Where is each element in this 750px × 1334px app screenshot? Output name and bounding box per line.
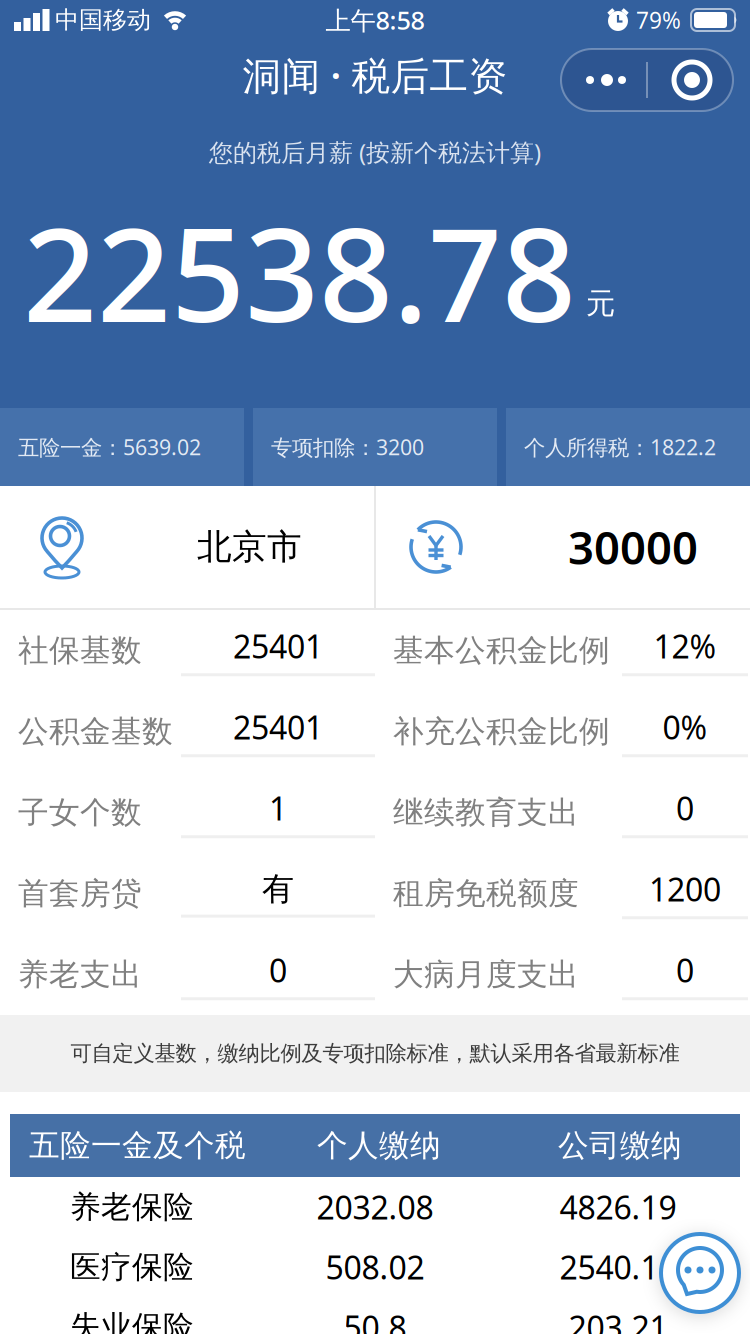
staticText: 公司缴纳 xyxy=(558,1127,682,1164)
staticText: 508.02 xyxy=(325,1246,424,1288)
button[interactable]: 25401 xyxy=(181,706,375,757)
button[interactable]: 关闭小程序 xyxy=(647,49,733,111)
staticText: 五险一金：5639.02 xyxy=(18,433,201,461)
staticText: 专项扣除：3200 xyxy=(271,433,424,461)
staticText: 基本公积金比例 xyxy=(393,632,610,669)
staticText: 养老保险 xyxy=(70,1188,194,1226)
staticText: 25401 xyxy=(233,625,323,667)
button[interactable]: 0 xyxy=(181,949,375,1000)
staticText: 大病月度支出 xyxy=(393,956,579,993)
staticText: 您的税后月薪 (按新个税法计算) xyxy=(209,136,541,168)
staticText: 22538.78 xyxy=(23,186,576,358)
staticText: 补充公积金比例 xyxy=(393,713,610,750)
button[interactable]: 1 xyxy=(181,787,375,838)
staticText: 0 xyxy=(676,949,694,991)
button[interactable]: 更多 xyxy=(561,49,647,111)
staticText: 失业保险 xyxy=(70,1308,194,1334)
button[interactable]: 客服咨询 xyxy=(661,1234,739,1312)
button[interactable]: 12% xyxy=(622,625,748,676)
button[interactable]: 0 xyxy=(622,787,748,838)
staticText: 中国移动 xyxy=(55,5,151,35)
staticText: 社保基数 xyxy=(18,632,142,669)
button[interactable]: 25401 xyxy=(181,625,375,676)
staticText: 继续教育支出 xyxy=(393,794,579,831)
staticText: 0 xyxy=(269,949,287,991)
staticText: 79% xyxy=(636,5,681,35)
staticText: 4826.19 xyxy=(559,1186,676,1228)
staticText: 有 xyxy=(262,869,294,909)
staticText: 12% xyxy=(653,625,716,667)
button[interactable]: 1200 xyxy=(622,868,748,919)
button[interactable]: 30000 xyxy=(376,486,750,608)
staticText: 洞闻 · 税后工资 xyxy=(242,49,507,101)
button[interactable]: 有 xyxy=(181,869,375,918)
button[interactable]: 0% xyxy=(622,706,748,757)
staticText: 1200 xyxy=(649,868,721,910)
staticText: 元 xyxy=(586,286,615,322)
staticText: 养老支出 xyxy=(18,956,142,993)
staticText: 北京市 xyxy=(197,526,302,568)
staticText: 25401 xyxy=(233,706,323,748)
staticText: 上午8:58 xyxy=(325,3,424,37)
staticText: 五险一金及个税 xyxy=(29,1127,246,1164)
staticText: 1 xyxy=(269,787,287,829)
staticText: 2032.08 xyxy=(316,1186,433,1228)
staticText: 2540.16 xyxy=(559,1246,676,1288)
staticText: 0% xyxy=(662,706,707,748)
button[interactable]: 北京市 xyxy=(0,486,374,608)
staticText: 个人缴纳 xyxy=(317,1127,441,1164)
staticText: 可自定义基数，缴纳比例及专项扣除标准，默认采用各省最新标准 xyxy=(70,1040,679,1067)
staticText: 首套房贷 xyxy=(18,875,142,912)
staticText: 0 xyxy=(676,787,694,829)
staticText: 203.21 xyxy=(568,1306,667,1334)
staticText: 公积金基数 xyxy=(18,713,173,750)
staticText: 个人所得税：1822.2 xyxy=(524,433,716,461)
staticText: 医疗保险 xyxy=(70,1248,194,1286)
staticText: 30000 xyxy=(568,517,698,577)
staticText: 租房免税额度 xyxy=(393,875,579,912)
staticText: 50.8 xyxy=(343,1306,406,1334)
button[interactable]: 0 xyxy=(622,949,748,1000)
staticText: 子女个数 xyxy=(18,794,142,831)
